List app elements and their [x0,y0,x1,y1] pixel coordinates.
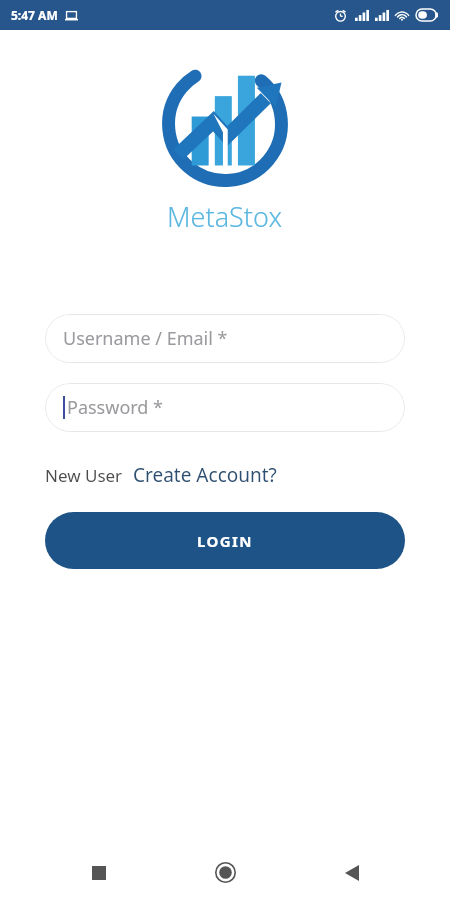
staticText: LOGIN [197,531,253,551]
staticText: Password * [67,395,164,420]
button[interactable]: Back [324,845,380,900]
staticText: Username / Email * [63,326,228,351]
button[interactable]: Create Account? [133,459,277,491]
button[interactable]: LOGIN [45,512,405,569]
staticText: 5:47 AM [11,7,58,23]
button[interactable]: Password * [45,383,405,432]
staticText: MetaStox [167,198,283,235]
button[interactable]: Username / Email * [45,314,405,363]
button[interactable]: Home [197,845,253,900]
staticText: Create Account? [133,462,277,488]
staticText: New User [45,464,123,487]
button[interactable]: Recent apps [71,845,127,900]
